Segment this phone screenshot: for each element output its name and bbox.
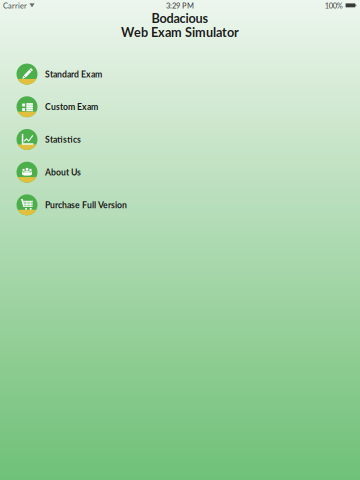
staticText: Purchase Full Version [45,200,127,210]
staticText: Web Exam Simulator [121,24,239,40]
button[interactable]: Standard Exam [0,58,360,90]
staticText: Carrier [3,1,27,10]
staticText: Custom Exam [45,101,98,112]
button[interactable]: Custom Exam [0,90,360,123]
staticText: Statistics [45,134,81,145]
staticText: 3:29 PM [166,1,194,10]
button[interactable]: About Us [0,156,360,188]
staticText: About Us [45,167,81,177]
button[interactable]: Statistics [0,123,360,156]
staticText: 100% [325,1,343,10]
button[interactable]: Purchase Full Version [0,188,360,221]
staticText: Standard Exam [45,69,102,79]
staticText: Bodacious [151,10,208,26]
